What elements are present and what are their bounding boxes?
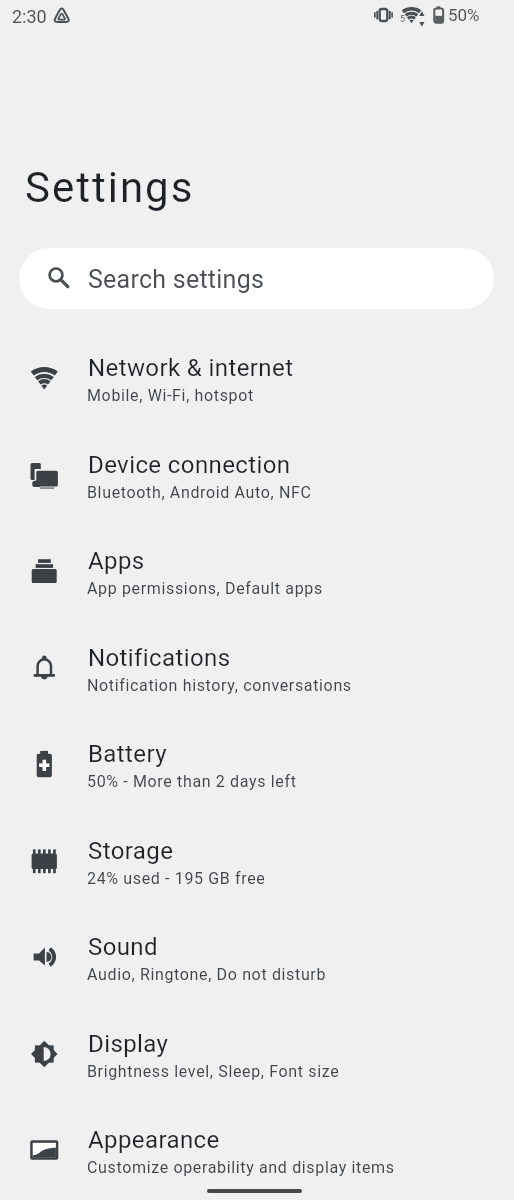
staticText: Device connection [88, 451, 291, 479]
staticText: 24% used - 195 GB free [87, 869, 266, 888]
staticText: Brightness level, Sleep, Font size [87, 1062, 340, 1081]
staticText: Notifications [88, 644, 231, 672]
staticText: Display [88, 1030, 169, 1058]
staticText: Appearance [88, 1126, 220, 1154]
button[interactable]: Notifications [0, 620, 514, 716]
button[interactable]: Appearance [0, 1102, 514, 1198]
staticText: Customize operability and display items [87, 1158, 395, 1177]
staticText: Apps [88, 547, 145, 575]
button[interactable]: Device connection [0, 427, 514, 523]
staticText: 50% - More than 2 days left [87, 772, 297, 791]
staticText: 50% [448, 5, 480, 25]
staticText: Network & internet [88, 354, 294, 382]
staticText: Storage [88, 837, 174, 865]
button[interactable]: Network & internet [0, 330, 514, 426]
button[interactable]: Apps [0, 523, 514, 619]
staticText: Bluetooth, Android Auto, NFC [87, 483, 312, 502]
staticText: 2:30 [12, 6, 47, 27]
button[interactable] [19, 248, 494, 309]
button[interactable]: Storage [0, 813, 514, 909]
staticText: 5 [400, 14, 406, 25]
staticText: Settings [25, 163, 195, 212]
staticText: Mobile, Wi-Fi, hotspot [87, 386, 254, 405]
button[interactable]: Sound [0, 909, 514, 1005]
button[interactable]: Battery [0, 716, 514, 812]
staticText: Search settings [88, 265, 265, 294]
staticText: Sound [88, 933, 158, 961]
button[interactable]: Display [0, 1006, 514, 1102]
staticText: Audio, Ringtone, Do not disturb [87, 965, 327, 984]
staticText: Battery [88, 740, 167, 768]
staticText: Notification history, conversations [87, 676, 352, 695]
staticText: App permissions, Default apps [87, 579, 323, 598]
